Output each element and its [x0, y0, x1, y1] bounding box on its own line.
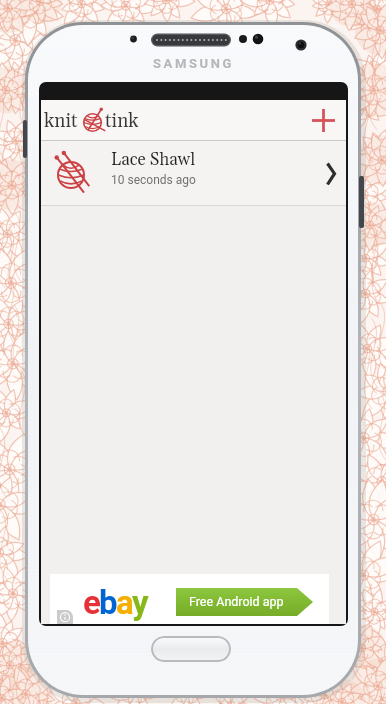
staticText: a	[116, 583, 132, 622]
button[interactable]	[151, 636, 231, 662]
staticText: Free Android app	[189, 594, 284, 609]
staticText: knit	[44, 109, 78, 133]
staticText: tink	[105, 109, 139, 133]
staticText: Lace Shawl	[111, 149, 196, 171]
button[interactable]	[300, 100, 346, 140]
staticText: e	[83, 583, 99, 622]
staticText: b	[99, 583, 116, 622]
button[interactable]: e	[50, 574, 329, 624]
staticText: 10 seconds ago	[111, 173, 196, 187]
staticText: SAMSUNG	[153, 56, 234, 71]
button[interactable]: Lace Shawl	[41, 141, 346, 205]
staticText: SAMSUNG	[153, 57, 234, 72]
staticText: y	[132, 583, 147, 622]
